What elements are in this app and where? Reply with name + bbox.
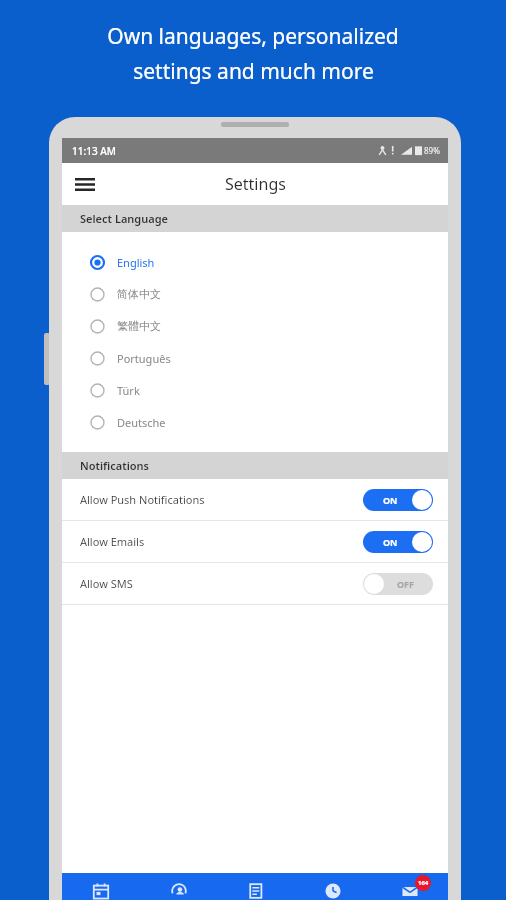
- staticText: Allow Push Notifications: [80, 492, 205, 507]
- button[interactable]: English: [62, 246, 448, 278]
- button[interactable]: Open navigation menu: [68, 167, 102, 201]
- staticText: English: [117, 255, 155, 270]
- staticText: Allow SMS: [80, 576, 133, 591]
- button[interactable]: Time Card: [294, 873, 371, 900]
- button[interactable]: Schedule: [62, 873, 140, 900]
- staticText: settings and much more: [133, 57, 374, 86]
- staticText: 164: [418, 879, 429, 887]
- staticText: Türk: [117, 383, 140, 398]
- staticText: Allow Emails: [80, 534, 145, 549]
- staticText: 11:13 AM: [72, 144, 116, 158]
- button[interactable]: Shift Trade: [140, 873, 217, 900]
- staticText: Notifications: [80, 458, 150, 473]
- staticText: 简体中文: [117, 287, 161, 301]
- staticText: 89%: [424, 145, 440, 156]
- staticText: OFF: [397, 578, 415, 590]
- staticText: ON: [383, 536, 398, 548]
- button[interactable]: Requests: [217, 873, 294, 900]
- button[interactable]: Allow Push Notifications: [62, 479, 448, 520]
- staticText: 繁體中文: [117, 319, 161, 333]
- staticText: Português: [117, 351, 171, 366]
- staticText: Select Language: [80, 211, 168, 226]
- staticText: Settings: [225, 173, 286, 195]
- button[interactable]: 简体中文: [62, 278, 448, 310]
- staticText: Own languages, personalized: [107, 22, 399, 51]
- button[interactable]: Português: [62, 342, 448, 374]
- button[interactable]: 繁體中文: [62, 310, 448, 342]
- button[interactable]: Türk: [62, 374, 448, 406]
- button[interactable]: Allow Emails: [62, 521, 448, 562]
- staticText: ON: [383, 494, 398, 506]
- button[interactable]: 164: [371, 873, 448, 900]
- staticText: Deutsche: [117, 415, 166, 430]
- button[interactable]: Deutsche: [62, 406, 448, 438]
- button[interactable]: Allow SMS: [62, 563, 448, 604]
